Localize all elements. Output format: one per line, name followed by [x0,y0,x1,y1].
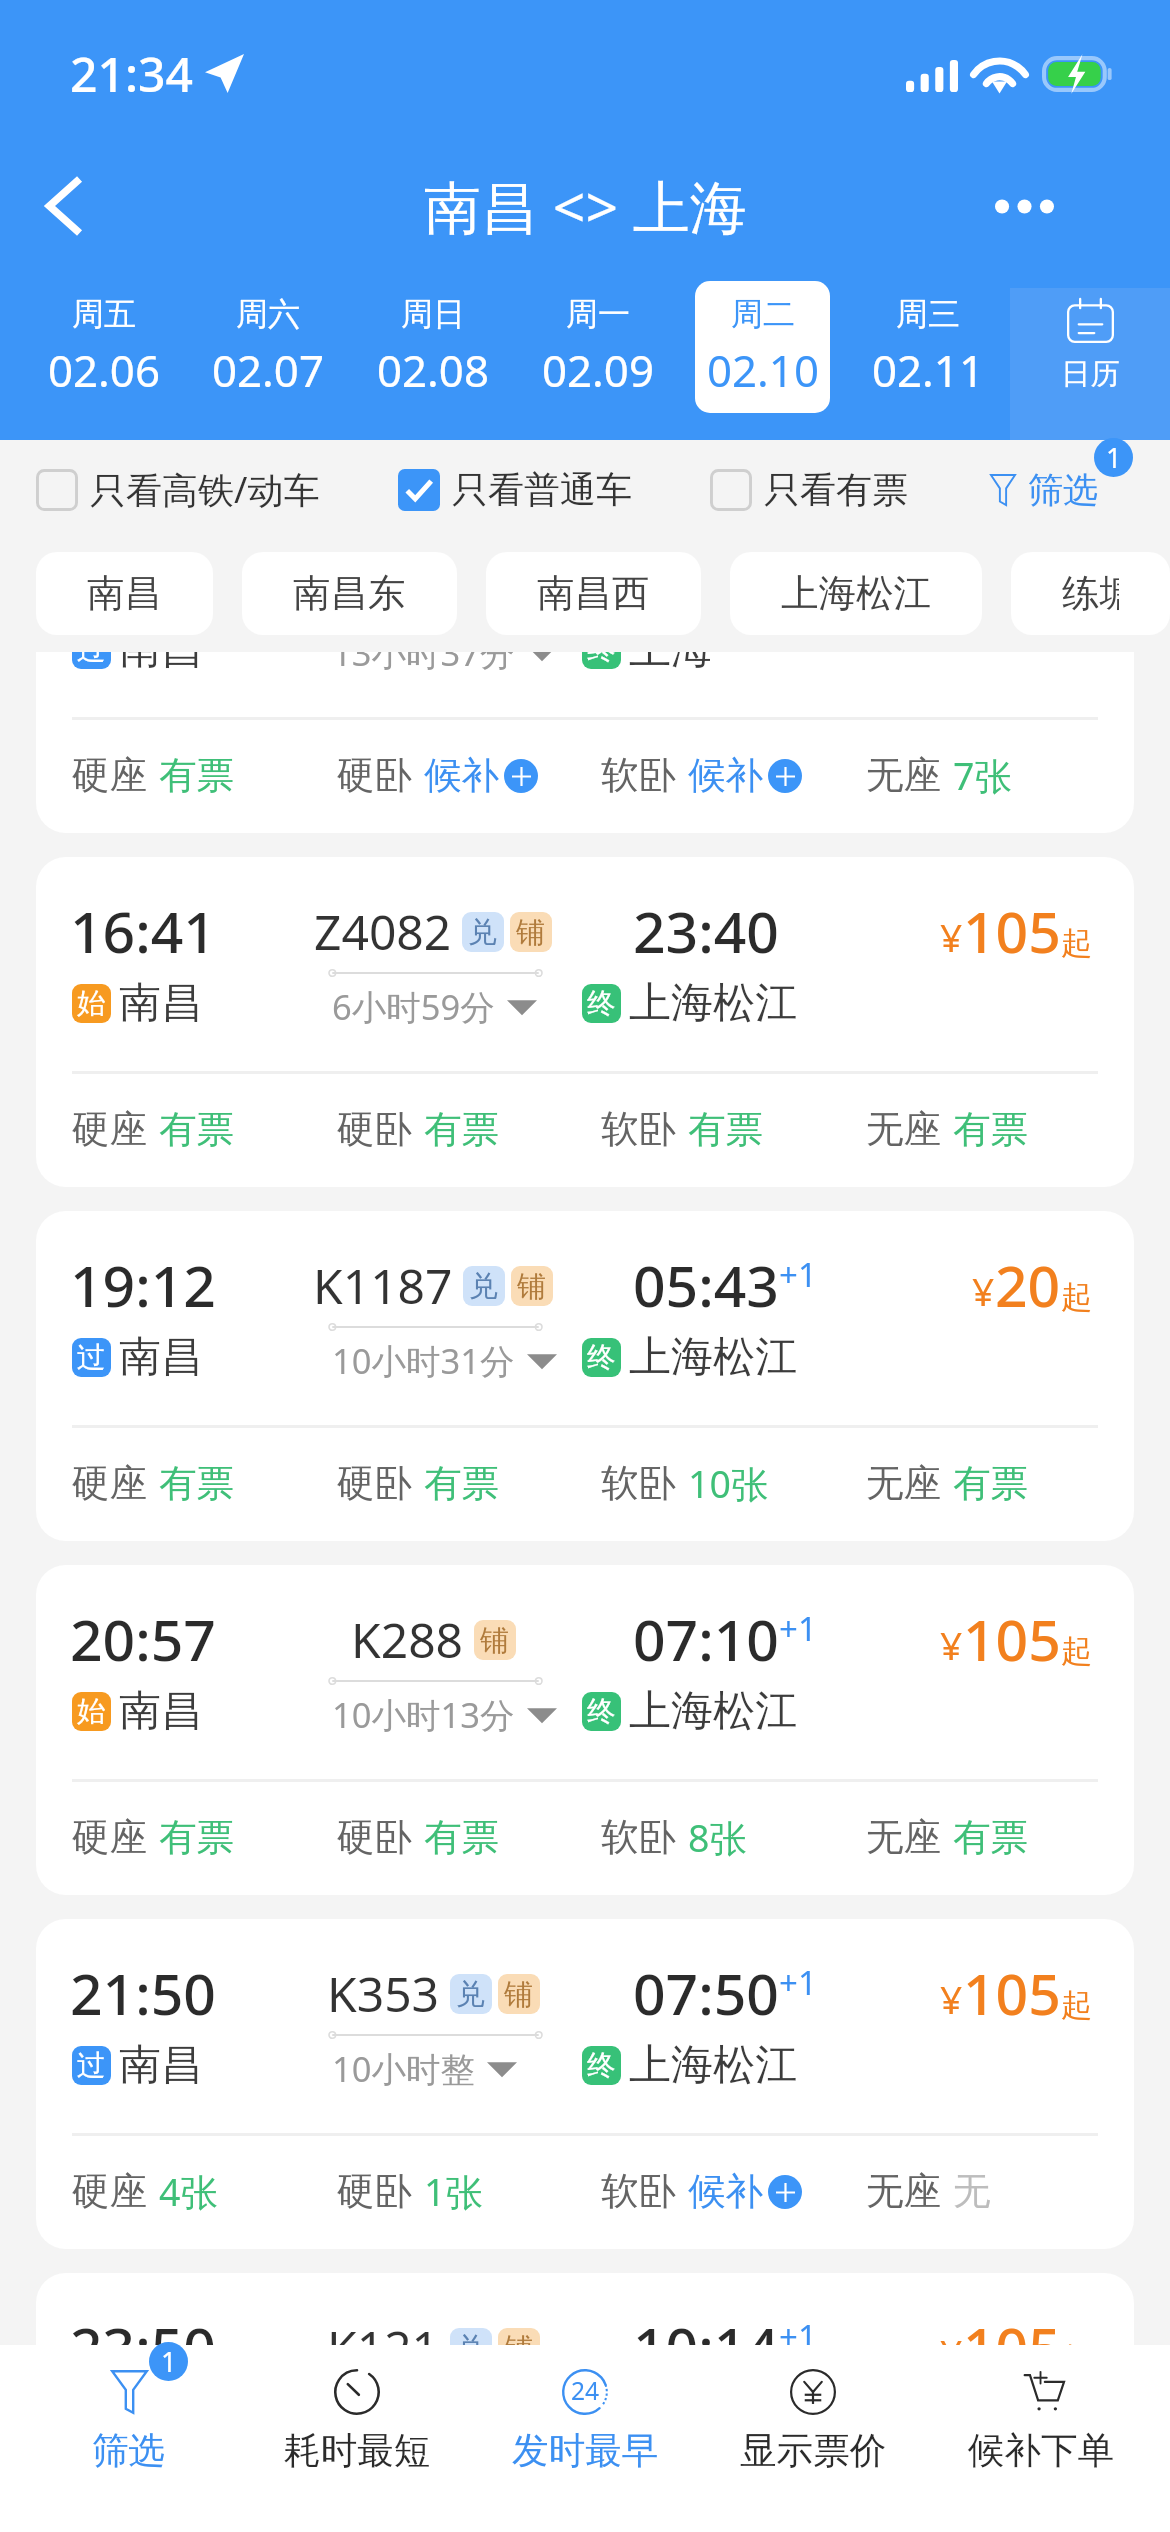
staticText: ¥ [972,1264,995,1317]
staticText: 起 [1061,924,1093,964]
button[interactable]: 南昌东 [242,552,457,635]
staticText: 02.09 [542,340,654,400]
staticText: 无座 [866,1460,941,1507]
button[interactable]: More options [952,134,1096,278]
staticText: 终 [587,1694,616,1730]
staticText: 20:57 [70,1600,216,1678]
staticText: 105 [963,892,1061,970]
staticText: +1 [779,2314,817,2345]
staticText: 过 [77,652,106,668]
button[interactable]: 练塘 [1011,552,1170,635]
button[interactable]: 上海松江 [730,552,982,635]
staticText: 南昌 [119,1331,203,1384]
button[interactable]: Back [0,134,136,278]
button[interactable]: 筛选 [990,456,1099,524]
staticText: 兑 [456,1976,486,2013]
staticText: 耗时最短 [284,2428,431,2474]
button[interactable]: 候补下单 [927,2345,1155,2532]
staticText: 上海松江 [629,1331,797,1384]
button[interactable]: 23:50 [36,2273,1134,2345]
button[interactable]: 只看普通车 [398,455,632,524]
staticText: 只看高铁/动车 [90,465,320,514]
staticText: 周三 [896,294,961,334]
staticText: 铺 [504,2330,534,2345]
staticText: 硬座 [72,2168,147,2215]
staticText: 周日 [401,294,466,334]
button[interactable]: 显示票价 [699,2345,927,2532]
staticText: 有票 [424,1814,499,1861]
button[interactable]: 耗时最短 [243,2345,471,2532]
staticText: 10小时整 [332,2045,475,2092]
staticText: 07:10 [633,1600,779,1678]
staticText: 周六 [236,294,301,334]
staticText: 南昌 <> 上海 [424,167,747,245]
staticText: 无座 [866,1106,941,1153]
button[interactable]: 只看有票 [710,455,908,524]
staticText: 硬卧 [337,1460,412,1507]
staticText: 24 [571,2374,600,2408]
staticText: 上海松江 [629,977,797,1030]
button[interactable]: 周一 [530,281,665,413]
button[interactable]: 1 [15,2345,243,2532]
staticText: 软卧 [601,752,676,799]
staticText: ¥ [940,910,963,963]
staticText: 23:40 [633,892,779,970]
staticText: 16:41 [70,892,216,970]
staticText: 有票 [688,1106,763,1153]
staticText: 07:50 [633,1954,779,2032]
button[interactable]: 周日 [365,281,500,413]
button[interactable]: 南昌西 [486,552,701,635]
staticText: 1张 [424,2166,483,2217]
staticText: 兑 [468,914,498,951]
staticText: 候补下单 [968,2428,1115,2474]
button[interactable]: 19:12 [36,1211,1134,1541]
staticText: 日历 [1061,356,1120,393]
button[interactable]: 南昌 [36,552,213,635]
staticText: 有票 [159,1106,234,1153]
staticText: 有票 [953,1814,1028,1861]
staticText: 硬座 [72,1106,147,1153]
staticText: 硬座 [72,1814,147,1861]
button[interactable]: 21:50 [36,1919,1134,2249]
button[interactable]: 周五 [37,281,171,413]
staticText: 13小时37分 [332,652,515,676]
staticText: 10张 [688,1458,769,1509]
staticText: 只看有票 [764,467,908,512]
staticText: 南昌 [119,1685,203,1738]
button[interactable]: ¥ [36,652,1134,833]
staticText: 硬卧 [337,1814,412,1861]
staticText: 02.11 [872,340,984,400]
staticText: 候补 [688,2168,763,2215]
staticText: 上海松江 [629,2039,797,2092]
staticText: 105 [963,1954,1061,2032]
staticText: +1 [779,1960,817,2005]
button[interactable]: 只看高铁/动车 [36,453,320,526]
staticText: 10小时13分 [332,1691,515,1738]
staticText: K1187 [313,1253,453,1318]
button[interactable]: 周二 [695,281,830,413]
button[interactable]: Calendar [1010,288,1170,447]
staticText: 有票 [159,752,234,799]
staticText: ¥ [940,1972,963,2025]
staticText: 10:14 [633,2308,779,2345]
button[interactable]: 周六 [201,281,335,413]
button[interactable]: 24 [471,2345,699,2532]
staticText: 终 [587,652,616,668]
staticText: 有票 [953,1106,1028,1153]
staticText: 终 [587,1340,616,1376]
staticText: K353 [327,1961,440,2026]
staticText: 有票 [159,1460,234,1507]
staticText: 105 [963,2308,1061,2345]
staticText: 起 [1061,1278,1093,1318]
staticText: 无 [953,2168,991,2215]
staticText: 21:34 [70,41,193,106]
staticText: 铺 [504,1976,534,2013]
button[interactable]: 20:57 [36,1565,1134,1895]
staticText: ¥ [940,1618,963,1671]
button[interactable]: 周三 [860,281,995,413]
button[interactable]: 16:41 [36,857,1134,1187]
staticText: 始 [77,986,106,1022]
staticText: 发时最早 [512,2428,659,2474]
staticText: 8张 [688,1812,747,1863]
staticText: 只看普通车 [452,467,632,512]
